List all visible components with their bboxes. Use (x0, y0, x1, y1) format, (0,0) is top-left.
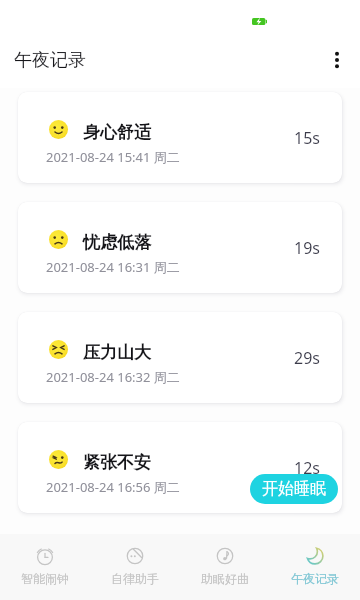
button[interactable]: 忧虑低落 (18, 202, 342, 293)
staticText: 智能闹钟 (21, 571, 69, 586)
button[interactable]: 压力山大 (18, 312, 342, 403)
button[interactable]: 紧张不安 (18, 422, 342, 513)
staticText: 2021-08-24 15:41 周二 (46, 148, 180, 166)
button[interactable]: More options (322, 45, 352, 75)
staticText: 压力山大 (83, 342, 151, 363)
staticText: 紧张不安 (83, 452, 151, 473)
button[interactable]: 开始睡眠 (250, 474, 338, 504)
staticText: 身心舒适 (83, 122, 151, 143)
staticText: 助眠好曲 (201, 571, 249, 586)
staticText: 忧虑低落 (83, 232, 151, 253)
staticText: 开始睡眠 (262, 479, 326, 499)
staticText: 15s (294, 127, 320, 149)
staticText: 午夜记录 (291, 571, 339, 586)
button[interactable]: 助眠好曲 (180, 534, 270, 600)
staticText: 2021-08-24 16:31 周二 (46, 258, 180, 276)
staticText: 自律助手 (111, 571, 159, 586)
button[interactable]: 身心舒适 (18, 92, 342, 183)
button[interactable]: 午夜记录 (270, 534, 360, 600)
staticText: 2021-08-24 16:32 周二 (46, 368, 180, 386)
staticText: 19s (294, 237, 320, 259)
staticText: 2021-08-24 16:56 周二 (46, 478, 180, 496)
button[interactable]: 自律助手 (90, 534, 180, 600)
staticText: 12s (294, 457, 320, 479)
button[interactable]: 智能闹钟 (0, 534, 90, 600)
staticText: 午夜记录 (14, 49, 86, 72)
staticText: 29s (294, 347, 320, 369)
